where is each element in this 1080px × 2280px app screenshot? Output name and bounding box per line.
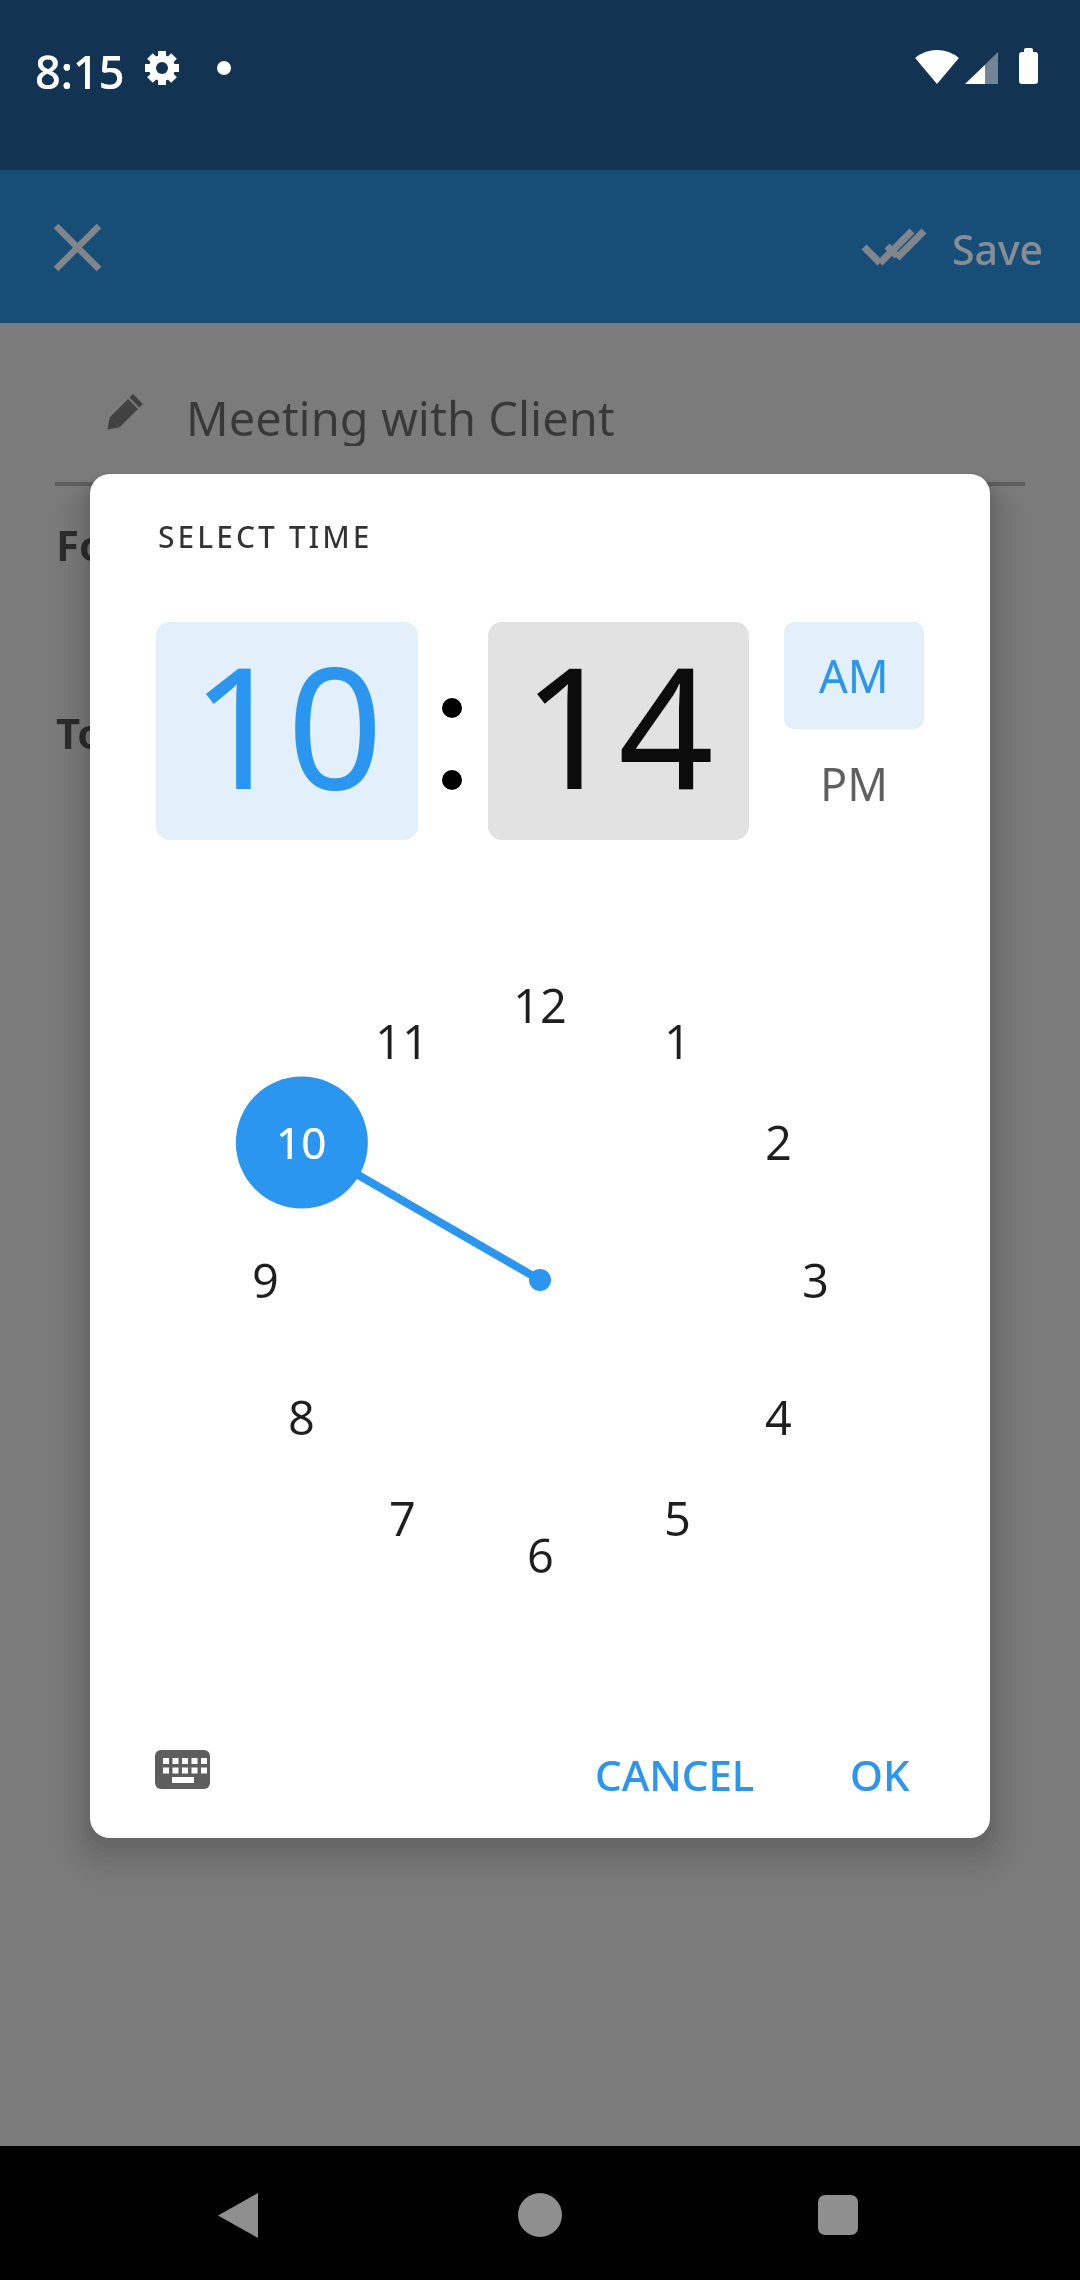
button[interactable] (490, 2181, 590, 2245)
staticText: 14 (522, 622, 715, 827)
staticText: 1 (664, 1009, 691, 1073)
button[interactable]: 12 (495, 970, 585, 1040)
staticText: Save (952, 221, 1044, 271)
staticText: 10 (191, 622, 384, 827)
staticText: 9 (252, 1248, 279, 1312)
button[interactable]: 3 (770, 1245, 860, 1315)
button[interactable]: PM (784, 729, 924, 837)
staticText: SELECT TIME (158, 516, 373, 557)
staticText: 10 (276, 1112, 327, 1172)
staticText: AM (819, 645, 889, 706)
staticText: 4 (765, 1385, 792, 1449)
button[interactable]: 11 (357, 1006, 447, 1076)
staticText: For (56, 516, 125, 562)
button[interactable]: 14 (488, 622, 749, 840)
staticText: 12 (513, 973, 567, 1037)
staticText: OK (850, 1746, 910, 1796)
staticText: 11 (375, 1009, 429, 1073)
button[interactable]: CANCEL (590, 1746, 760, 1796)
button[interactable]: Save (850, 210, 1050, 282)
staticText: 8 (288, 1385, 315, 1449)
button[interactable]: 5 (632, 1483, 722, 1553)
button[interactable] (788, 2181, 888, 2245)
staticText: Meeting with Client (186, 386, 615, 446)
button[interactable]: OK (820, 1746, 940, 1796)
button[interactable]: 4 (733, 1382, 823, 1452)
button[interactable]: 10 (156, 622, 418, 840)
button[interactable] (143, 1738, 223, 1802)
staticText: To (56, 704, 104, 750)
button[interactable]: 7 (357, 1483, 447, 1553)
staticText: 7 (389, 1486, 416, 1550)
staticText: 2 (765, 1110, 792, 1174)
button[interactable] (190, 2181, 290, 2245)
button[interactable]: 10 (256, 1107, 346, 1177)
staticText: 6 (527, 1523, 554, 1587)
button[interactable]: 8 (256, 1382, 346, 1452)
button[interactable]: 2 (733, 1107, 823, 1177)
button[interactable] (44, 214, 110, 280)
button[interactable]: AM (784, 622, 924, 729)
staticText: 3 (802, 1248, 829, 1312)
button[interactable]: 1 (632, 1006, 722, 1076)
staticText: CANCEL (595, 1746, 755, 1796)
button[interactable]: 9 (220, 1245, 310, 1315)
staticText: 5 (664, 1486, 691, 1550)
staticText: PM (820, 753, 889, 814)
staticText: 8:15 (35, 41, 125, 93)
button[interactable]: 6 (495, 1520, 585, 1590)
